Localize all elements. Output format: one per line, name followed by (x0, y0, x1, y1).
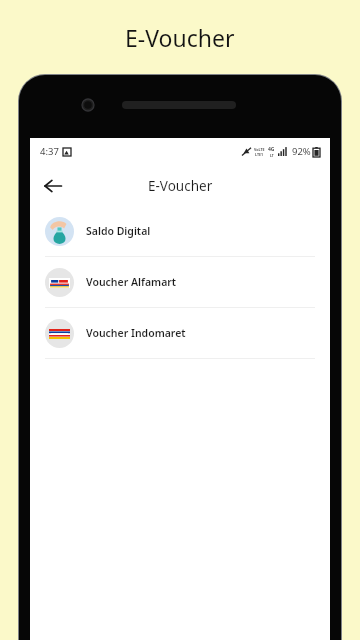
staticText: 4:37 (40, 145, 59, 158)
button[interactable]: Saldo Digital (30, 206, 330, 256)
button[interactable]: Back (37, 170, 69, 202)
staticText: 92% (292, 145, 311, 158)
button[interactable]: Voucher Indomaret (30, 308, 330, 358)
button[interactable]: Voucher Alfamart (30, 257, 330, 307)
staticText: E-Voucher (125, 22, 235, 53)
staticText: 4G (268, 146, 275, 153)
staticText: LT (270, 153, 274, 158)
staticText: Voucher Indomaret (86, 326, 186, 340)
staticText: VoLTE (254, 147, 265, 152)
staticText: E-Voucher (148, 177, 213, 195)
staticText: Voucher Alfamart (86, 275, 177, 289)
staticText: LTE1 (255, 152, 264, 157)
staticText: Saldo Digital (86, 224, 151, 238)
